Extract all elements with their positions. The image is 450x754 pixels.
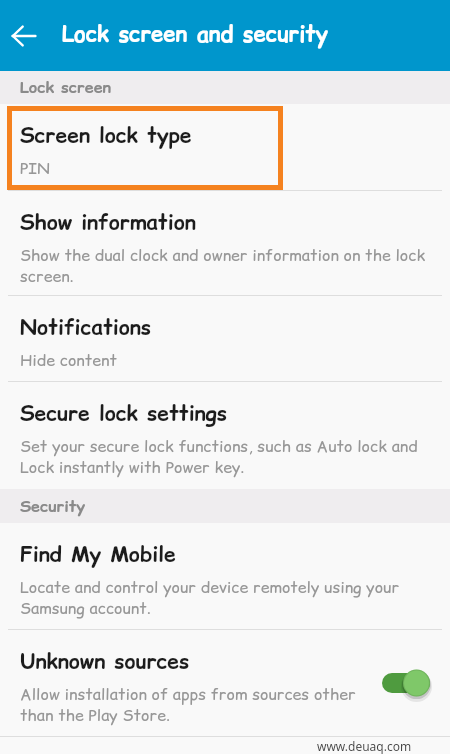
staticText: PIN [20, 157, 50, 179]
staticText: Lock screen and security [62, 19, 328, 50]
staticText: Unknown sources [20, 647, 190, 676]
staticText: Lock screen [20, 76, 111, 98]
staticText: Locate and control your device remotely … [20, 576, 436, 619]
button[interactable]: Back [0, 11, 48, 61]
button[interactable]: Secure lock settings [0, 382, 450, 489]
staticText: Find My Mobile [20, 540, 176, 569]
staticText: Allow installation of apps from sources … [20, 683, 374, 726]
button[interactable]: Find My Mobile [0, 523, 450, 630]
staticText: Security [20, 495, 86, 517]
staticText: Show information [20, 208, 196, 237]
button[interactable]: Unknown sources [0, 630, 450, 736]
staticText: Set your secure lock functions, such as … [20, 435, 436, 478]
button[interactable]: Show information [0, 191, 450, 296]
staticText: Hide content [20, 349, 117, 371]
staticText: Screen lock type [20, 121, 192, 150]
button[interactable]: Notifications [0, 296, 450, 382]
staticText: www.deuaq.com [317, 738, 412, 754]
staticText: Show the dual clock and owner informatio… [20, 244, 436, 287]
staticText: Secure lock settings [20, 399, 227, 428]
button[interactable]: Screen lock type [0, 104, 450, 191]
staticText: Notifications [20, 313, 151, 342]
button[interactable]: Toggle unknown sources [378, 661, 436, 705]
